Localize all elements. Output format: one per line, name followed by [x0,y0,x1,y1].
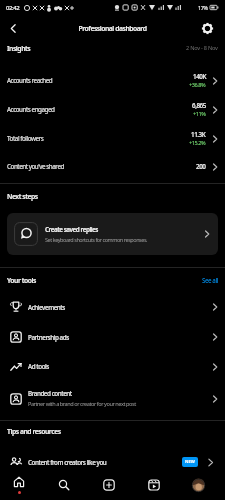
staticText: 6,865 [192,101,206,110]
button[interactable] [176,473,221,497]
staticText: +36.8% [189,81,206,89]
button[interactable] [4,19,22,37]
button[interactable]: Accounts reached [7,66,219,95]
staticText: +11% [193,110,206,118]
staticText: Partnership ads [28,333,69,342]
staticText: Accounts engaged [7,105,55,114]
staticText: Branded content [28,389,72,398]
staticText: Achievements [28,303,65,312]
button[interactable]: Total followers [7,124,219,153]
staticText: Insights [7,44,31,53]
staticText: See all [202,276,218,284]
button[interactable]: Partnership ads [10,322,219,352]
staticText: 11.3K [191,130,206,139]
staticText: 17% [198,4,208,11]
button[interactable] [0,473,41,497]
staticText: Set keyboard shortcuts for common respon… [45,236,148,243]
staticText: Tips and resources [7,427,61,436]
staticText: Partner with a brand or creator for your… [28,400,136,408]
button[interactable] [199,20,215,36]
button[interactable]: Ad tools [10,352,219,381]
staticText: 200 [196,162,206,171]
button[interactable]: Accounts engaged [7,95,219,124]
button[interactable]: Create saved replies [7,213,218,255]
button[interactable]: Branded content [10,381,219,416]
button[interactable]: See all [202,276,218,284]
button[interactable] [131,473,176,497]
button[interactable]: Content from creators like you [10,451,215,473]
staticText: Content you've shared [7,162,64,171]
staticText: Professional dashboard [78,24,147,33]
staticText: Create saved replies [45,225,98,234]
staticText: Next steps [7,192,38,201]
staticText: 140K [193,72,206,81]
staticText: Your tools [7,276,36,285]
staticText: 2 Nov - 8 Nov [186,44,218,52]
staticText: 02:42 [6,4,20,12]
staticText: Content from creators like you [28,458,107,467]
staticText: Ad tools [28,362,49,371]
button[interactable]: Achievements [10,292,219,322]
staticText: +15.2% [189,139,206,147]
staticText: NEW [185,459,195,465]
button[interactable]: Content you've shared [7,153,219,180]
staticText: Accounts reached [7,76,53,85]
staticText: Total followers [7,134,44,143]
button[interactable] [86,473,131,497]
button[interactable] [41,473,86,497]
